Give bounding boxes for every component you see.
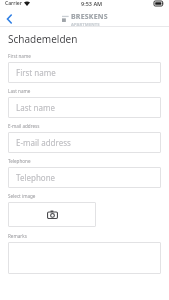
- staticText: Select image: [8, 193, 36, 199]
- staticText: Carrier: [5, 0, 22, 7]
- staticText: Last name: [16, 102, 55, 113]
- button[interactable]: [8, 242, 161, 274]
- staticText: APARTMENTS: [71, 22, 100, 26]
- button[interactable]: Telephone: [8, 167, 161, 188]
- staticText: E-mail address: [8, 123, 40, 129]
- staticText: Telephone: [8, 158, 31, 164]
- staticText: Schademelden: [8, 32, 78, 46]
- button[interactable]: First name: [8, 62, 161, 83]
- button[interactable]: Last name: [8, 97, 161, 118]
- button[interactable]: E-mail address: [8, 132, 161, 153]
- staticText: Remarks: [8, 233, 27, 239]
- staticText: First name: [8, 53, 31, 59]
- staticText: First name: [16, 67, 56, 78]
- staticText: BRESKENS: [71, 12, 108, 22]
- staticText: Telephone: [16, 172, 56, 183]
- button[interactable]: Back: [2, 12, 16, 26]
- staticText: Last name: [8, 88, 31, 94]
- staticText: 9:53 AM: [81, 0, 103, 7]
- staticText: E-mail address: [16, 137, 71, 148]
- button[interactable]: Select image: [8, 202, 96, 227]
